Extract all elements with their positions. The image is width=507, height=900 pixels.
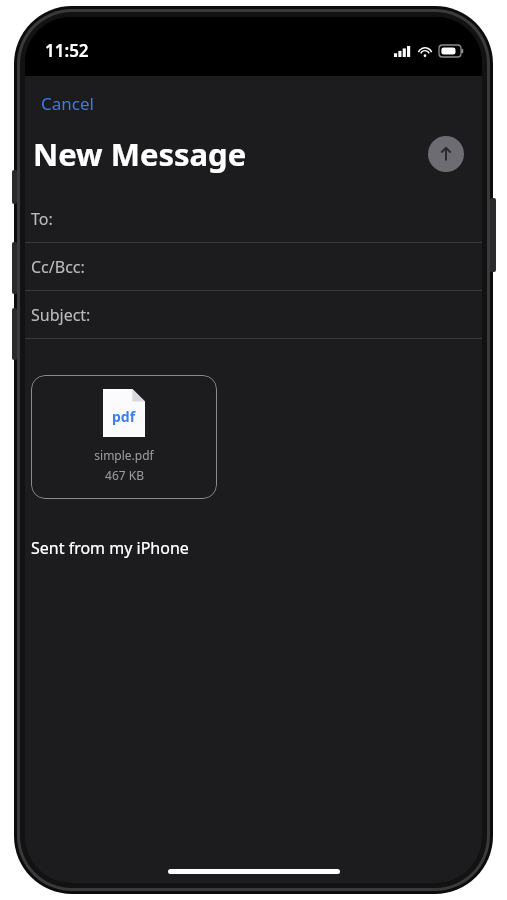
button[interactable]: pdf — [31, 375, 217, 499]
staticText: pdf — [112, 407, 136, 426]
staticText: Cc/Bcc: — [31, 256, 85, 278]
staticText: 11:52 — [45, 39, 89, 62]
button[interactable]: Cancel — [33, 88, 102, 119]
staticText: Subject: — [31, 304, 91, 326]
staticText: simple.pdf — [94, 447, 154, 463]
staticText: Sent from my iPhone — [31, 537, 189, 559]
button[interactable]: Send — [428, 136, 464, 172]
button[interactable]: Subject: — [25, 291, 482, 339]
staticText: To: — [31, 208, 53, 230]
staticText: New Message — [33, 133, 428, 175]
staticText: Cancel — [41, 92, 94, 115]
button[interactable]: Cc/Bcc: — [25, 243, 482, 291]
button[interactable]: To: — [25, 195, 482, 243]
staticText: 467 KB — [105, 467, 144, 483]
